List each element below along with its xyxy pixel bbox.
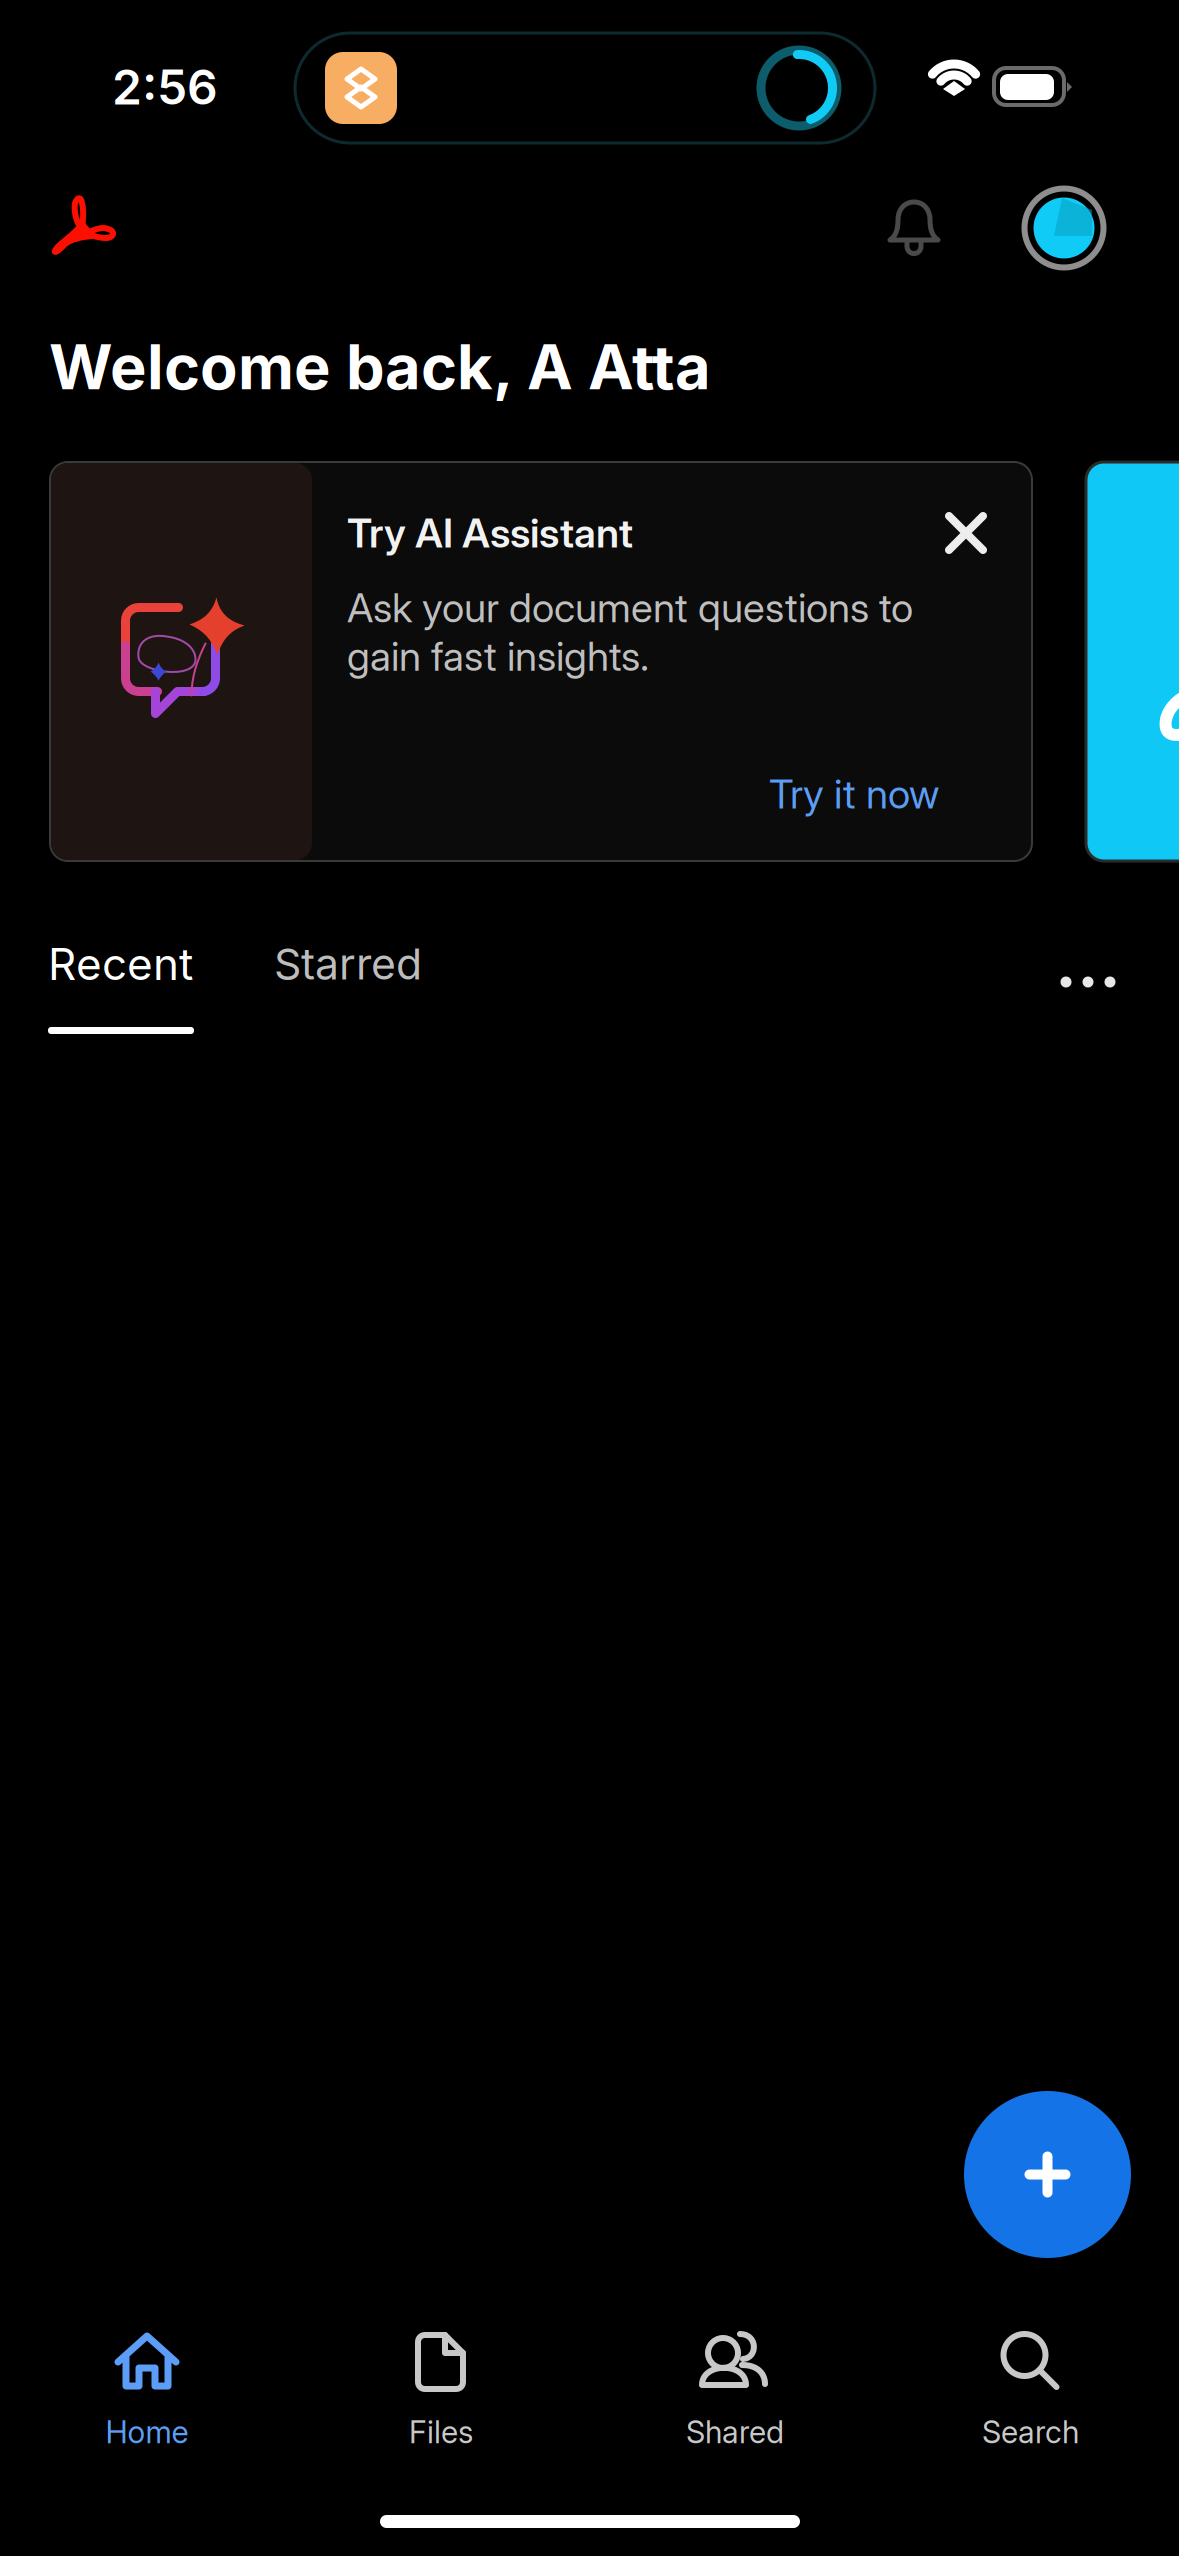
staticText: Shared	[686, 2413, 784, 2450]
button[interactable]: Home	[0, 2320, 294, 2490]
button[interactable]: More options	[1033, 942, 1143, 1022]
staticText: Search	[982, 2413, 1079, 2450]
staticText: Try it now	[769, 770, 939, 818]
staticText: 2:56	[112, 58, 218, 116]
staticText: Files	[409, 2413, 473, 2450]
staticText: Try AI Assistant	[347, 509, 633, 557]
button[interactable]: Search	[882, 2320, 1179, 2490]
staticText: Ask your document questions to gain fast…	[347, 584, 913, 680]
staticText: Welcome back, A Atta	[49, 330, 711, 404]
staticText: Home	[105, 2413, 188, 2450]
staticText: Recent	[48, 937, 193, 991]
button[interactable]: Adobe Acrobat	[35, 175, 131, 271]
button[interactable]: Starred	[274, 934, 494, 994]
button[interactable]: Create	[964, 2091, 1131, 2258]
button[interactable]: Files	[294, 2320, 588, 2490]
button[interactable]: Try it now	[739, 764, 969, 824]
button[interactable]: Dismiss	[937, 504, 995, 562]
button[interactable]: Profile	[1016, 180, 1112, 276]
button[interactable]: Recent	[48, 934, 248, 1054]
button[interactable]: Shared	[588, 2320, 882, 2490]
button[interactable]: Notifications	[868, 181, 960, 273]
staticText: Starred	[274, 938, 422, 990]
